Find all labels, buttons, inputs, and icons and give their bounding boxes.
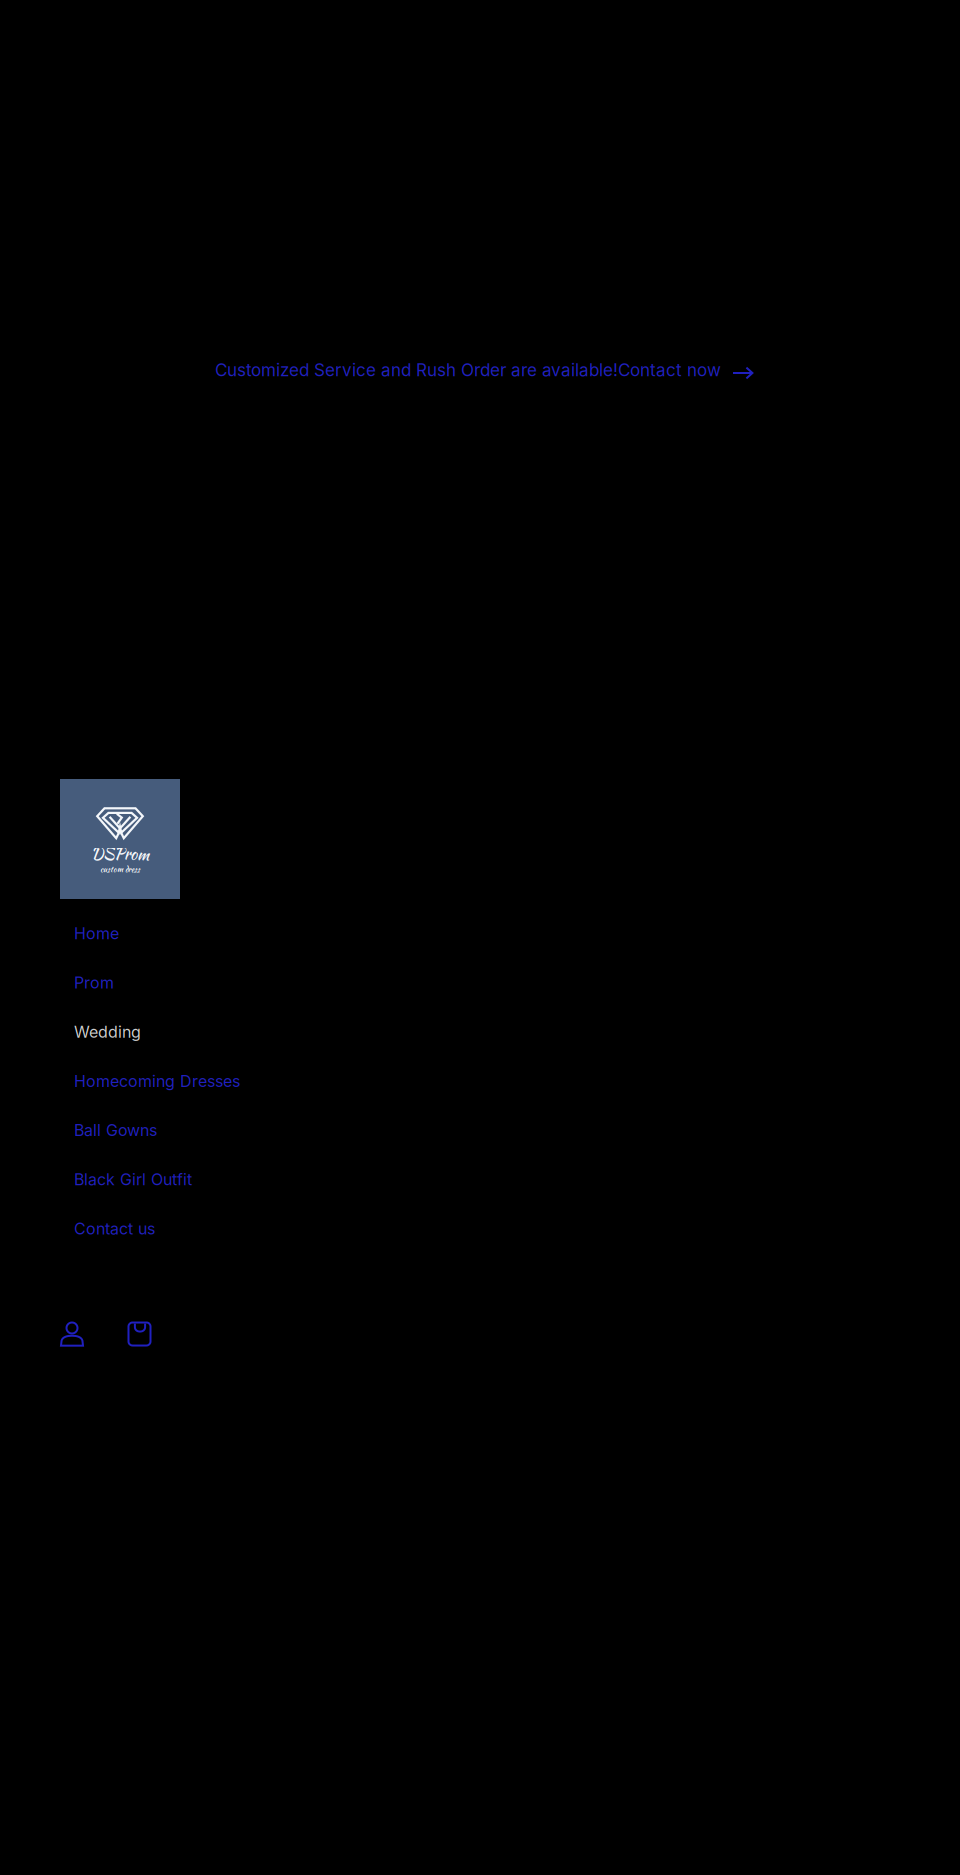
button[interactable]: Contact us (74, 1203, 914, 1252)
staticText: Black Girl Outfit (74, 1170, 192, 1189)
button[interactable]: Homecoming Dresses (74, 1056, 914, 1105)
button[interactable]: Home (74, 908, 914, 957)
button[interactable]: Black Girl Outfit (74, 1154, 914, 1203)
staticText: Ball Gowns (74, 1121, 157, 1140)
button[interactable]: Prom (74, 957, 914, 1006)
staticText: DSProm (91, 842, 149, 866)
button[interactable]: Customized Service and Rush Order are av… (215, 357, 755, 387)
staticText: Prom (74, 973, 114, 992)
staticText: Homecoming Dresses (74, 1071, 240, 1091)
staticText: Home (74, 924, 119, 943)
staticText: Wedding (74, 1022, 141, 1042)
staticText: Customized Service and Rush Order are av… (215, 360, 721, 380)
button[interactable]: Account (60, 1322, 84, 1347)
staticText: custom dress (100, 864, 140, 875)
button[interactable]: Cart (128, 1322, 151, 1346)
button[interactable]: DSProm home (60, 779, 180, 899)
button[interactable]: Wedding (74, 1006, 914, 1055)
button[interactable]: Ball Gowns (74, 1105, 914, 1154)
staticText: Contact us (74, 1219, 155, 1238)
